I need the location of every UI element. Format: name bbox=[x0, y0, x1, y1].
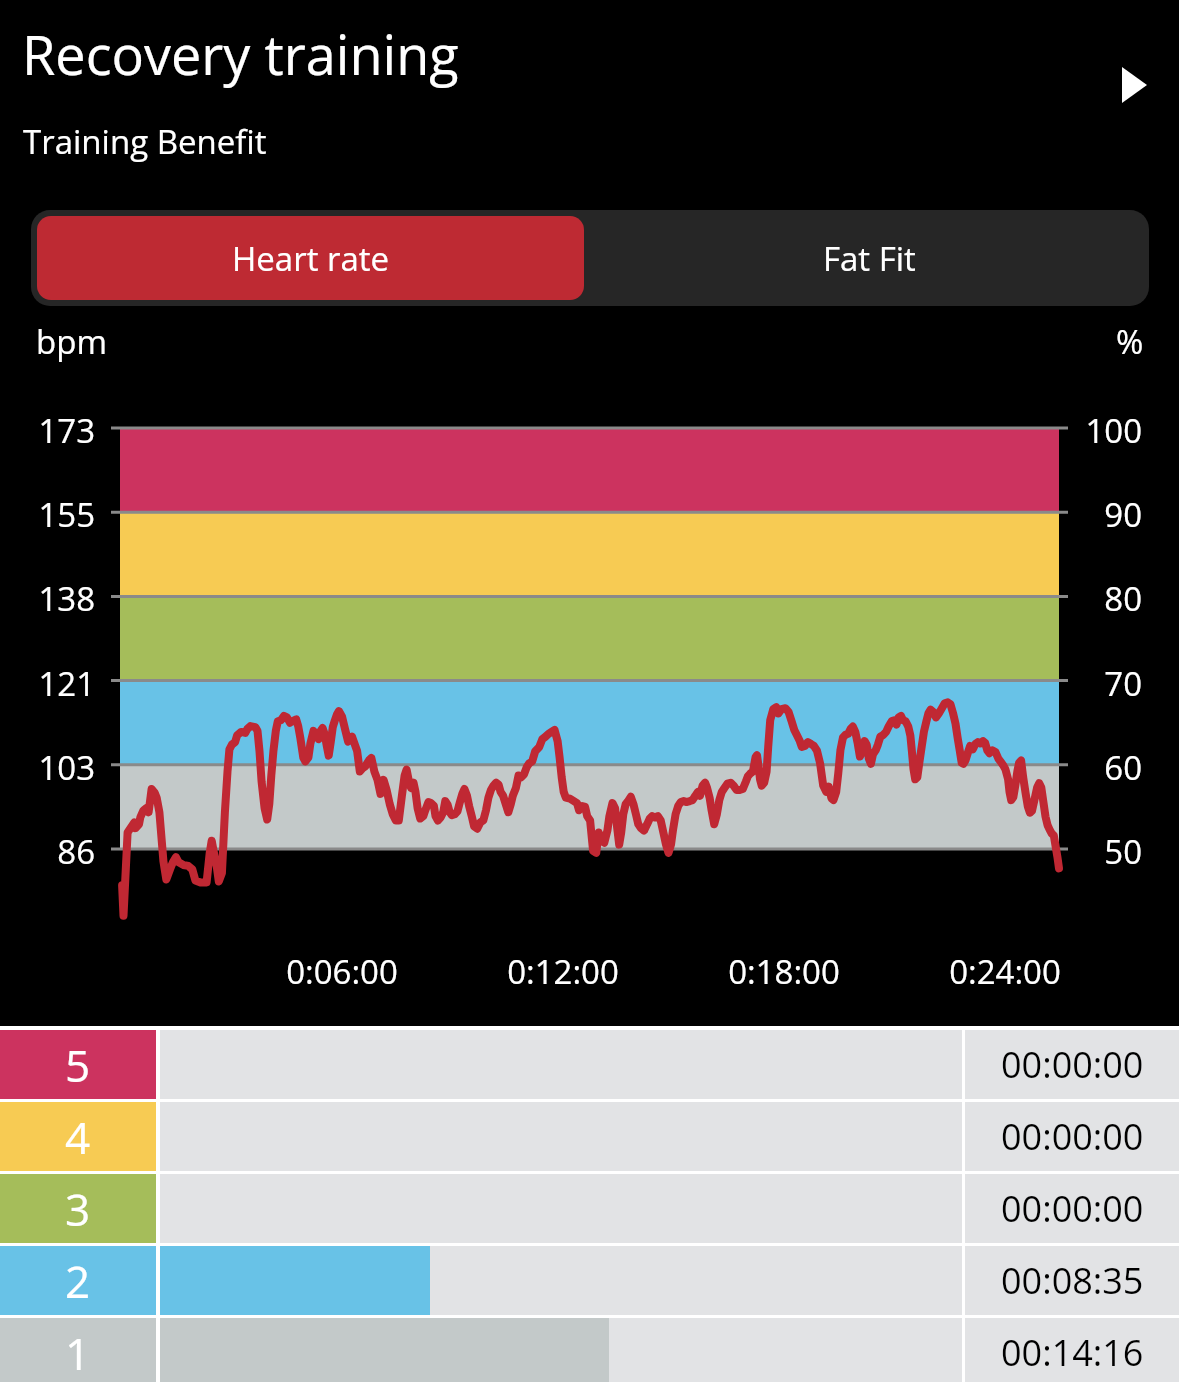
staticText: 155 bbox=[2, 492, 95, 537]
staticText: 00:08:35 bbox=[1001, 1256, 1144, 1305]
staticText: 00:14:16 bbox=[1001, 1328, 1144, 1377]
staticText: Fat Fit bbox=[823, 236, 916, 281]
staticText: 3 bbox=[65, 1179, 91, 1239]
staticText: Recovery training bbox=[22, 17, 459, 91]
staticText: % bbox=[1116, 319, 1144, 364]
button[interactable]: Play bbox=[1100, 50, 1170, 120]
button[interactable]: 1 bbox=[0, 1318, 1179, 1382]
staticText: 0:12:00 bbox=[463, 949, 663, 994]
staticText: bpm bbox=[36, 319, 107, 364]
staticText: Training Benefit bbox=[23, 119, 267, 164]
staticText: 103 bbox=[2, 745, 95, 790]
staticText: 1 bbox=[65, 1323, 91, 1382]
staticText: 00:00:00 bbox=[1001, 1184, 1144, 1233]
staticText: 70 bbox=[1081, 661, 1142, 706]
staticText: 5 bbox=[65, 1035, 91, 1095]
staticText: 4 bbox=[65, 1107, 91, 1167]
staticText: 86 bbox=[2, 829, 95, 874]
staticText: 90 bbox=[1081, 492, 1142, 537]
staticText: 60 bbox=[1081, 745, 1142, 790]
staticText: 0:06:00 bbox=[242, 949, 442, 994]
button[interactable]: Heart rate bbox=[31, 210, 590, 306]
staticText: 0:18:00 bbox=[684, 949, 884, 994]
staticText: 80 bbox=[1081, 576, 1142, 621]
staticText: 121 bbox=[2, 661, 95, 706]
staticText: 173 bbox=[2, 408, 95, 453]
staticText: 50 bbox=[1081, 829, 1142, 874]
staticText: 00:00:00 bbox=[1001, 1040, 1144, 1089]
staticText: 2 bbox=[65, 1251, 91, 1311]
button[interactable]: Fat Fit bbox=[590, 210, 1149, 306]
staticText: 100 bbox=[1081, 408, 1142, 453]
staticText: 138 bbox=[2, 576, 95, 621]
button[interactable]: 2 bbox=[0, 1246, 1179, 1315]
staticText: Heart rate bbox=[232, 236, 390, 281]
button[interactable]: 3 bbox=[0, 1174, 1179, 1243]
button[interactable]: 5 bbox=[0, 1030, 1179, 1099]
button[interactable]: 4 bbox=[0, 1102, 1179, 1171]
staticText: 0:24:00 bbox=[905, 949, 1105, 994]
staticText: 00:00:00 bbox=[1001, 1112, 1144, 1161]
